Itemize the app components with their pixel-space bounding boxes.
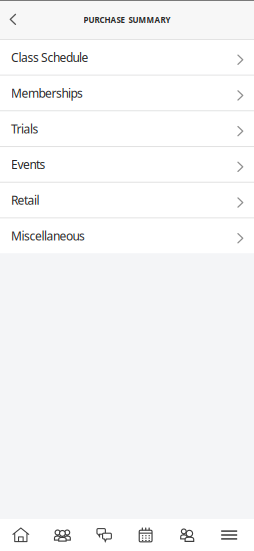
button[interactable]: More <box>208 519 250 551</box>
button[interactable]: Memberships <box>0 76 254 110</box>
staticText: Trials <box>11 121 38 137</box>
button[interactable]: Retail <box>0 183 254 217</box>
staticText: Retail <box>11 192 39 208</box>
button[interactable]: Staff <box>167 519 208 551</box>
staticText: Miscellaneous <box>11 228 85 244</box>
button[interactable]: Clients <box>42 519 83 551</box>
button[interactable]: Home <box>0 519 42 551</box>
button[interactable]: Miscellaneous <box>0 218 254 253</box>
button[interactable]: Class Schedule <box>0 40 254 75</box>
button[interactable]: Back <box>0 1 27 39</box>
staticText: Memberships <box>11 85 83 101</box>
button[interactable]: Messages <box>83 519 125 551</box>
button[interactable]: Events <box>0 147 254 182</box>
staticText: PURCHASE SUMMARY <box>83 15 170 25</box>
button[interactable]: Calendar <box>125 519 167 551</box>
button[interactable]: Trials <box>0 111 254 146</box>
staticText: Events <box>11 156 45 172</box>
staticText: Class Schedule <box>11 49 88 65</box>
